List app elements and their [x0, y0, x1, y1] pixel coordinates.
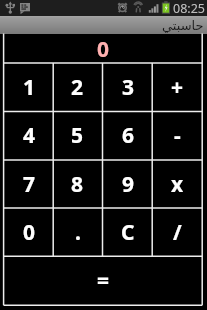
staticText: / [173, 218, 182, 247]
button[interactable]: 5 [53, 111, 102, 159]
staticText: = [97, 266, 110, 295]
button[interactable]: 9 [103, 160, 153, 208]
button[interactable]: 0 [4, 208, 54, 256]
button[interactable]: Display value 0 [4, 34, 203, 64]
staticText: 2 [71, 73, 84, 102]
staticText: 08:25 [173, 0, 205, 16]
staticText: 0 [97, 35, 110, 64]
staticText: 4 [23, 121, 36, 150]
button[interactable]: + [152, 63, 202, 111]
button[interactable]: x [152, 160, 202, 208]
button[interactable]: 6 [103, 111, 153, 159]
staticText: . [75, 218, 81, 247]
staticText: 7 [23, 170, 36, 199]
button[interactable]: 3 [103, 63, 153, 111]
button[interactable]: / [152, 208, 202, 256]
staticText: 5 [71, 121, 84, 150]
staticText: C [121, 218, 135, 247]
staticText: حاسبتي [162, 18, 204, 33]
staticText: 0 [23, 218, 36, 247]
staticText: 1 [23, 73, 36, 102]
staticText: 6 [122, 121, 135, 150]
button[interactable]: equals [4, 256, 203, 305]
button[interactable]: 2 [53, 63, 102, 111]
button[interactable]: 8 [53, 160, 102, 208]
staticText: - [174, 121, 181, 150]
staticText: + [171, 73, 184, 102]
button[interactable]: - [152, 111, 202, 159]
button[interactable]: 4 [4, 111, 54, 159]
staticText: x [171, 170, 184, 199]
button[interactable]: . [53, 208, 102, 256]
staticText: 9 [122, 170, 135, 199]
staticText: 8 [71, 170, 84, 199]
button[interactable]: C [103, 208, 153, 256]
button[interactable]: 7 [4, 160, 54, 208]
staticText: 3 [122, 73, 135, 102]
button[interactable]: 1 [4, 63, 54, 111]
